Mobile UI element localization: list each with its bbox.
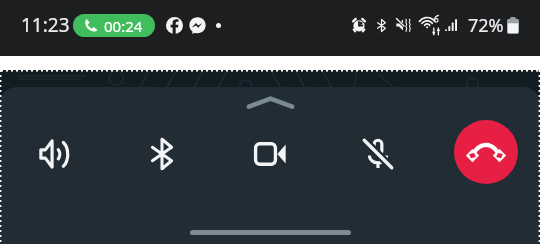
staticText: 11:23	[21, 12, 70, 38]
button[interactable]: Bluetooth	[108, 124, 216, 184]
button[interactable]: Video	[216, 124, 324, 184]
button[interactable]: Mute	[324, 124, 432, 184]
staticText: 00:24	[104, 16, 143, 36]
button[interactable]: Expand	[247, 95, 294, 110]
staticText: 72%	[468, 13, 504, 38]
button[interactable]: End call	[454, 120, 518, 184]
button[interactable]: Speaker	[0, 124, 108, 184]
button[interactable]: 00:24	[73, 14, 155, 37]
